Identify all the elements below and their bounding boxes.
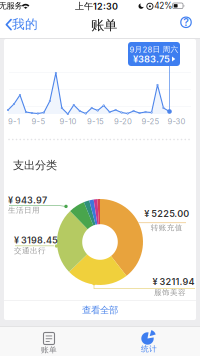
staticText: 9-25 [141,117,159,126]
staticText: ¥ 943.97 [8,195,47,206]
staticText: 9-1 [8,117,20,126]
staticText: ¥ 5225.00 [144,208,189,219]
button[interactable]: 账单 [43,332,83,356]
staticText: 账单 [41,345,57,355]
button[interactable]: 查看全部 [4,301,196,320]
staticText: 查看全部 [82,304,118,316]
staticText: ¥383.75 [133,53,170,65]
staticText: 9-5 [31,117,45,126]
staticText: 转账充值 [151,223,183,232]
staticText: 9-30 [167,117,185,126]
staticText: ¥ 3211.94 [152,276,194,287]
staticText: 9月28日 周六 [129,45,178,54]
staticText: 9-10 [59,117,76,126]
staticText: 支出分类 [13,158,57,172]
staticText: 无服务 [0,1,23,11]
staticText: 生活日用 [8,205,40,215]
staticText: 我的 [12,16,38,32]
staticText: 统计 [141,344,157,354]
staticText: 9-15 [87,117,104,126]
staticText: 上午12:30 [75,0,118,12]
staticText: 42% [154,1,172,11]
staticText: ¥ 3198.45 [14,235,58,246]
staticText: 9-20 [114,117,132,126]
staticText: 服饰美容 [154,288,186,297]
staticText: 交通出行 [14,246,46,255]
staticText: ? [183,16,189,29]
staticText: 账单 [91,17,117,34]
button[interactable]: 9月28日 周六 [128,42,180,66]
button[interactable]: 统计 [142,331,182,355]
button[interactable]: 帮助 [179,15,193,29]
button[interactable]: 我的 [0,13,40,37]
